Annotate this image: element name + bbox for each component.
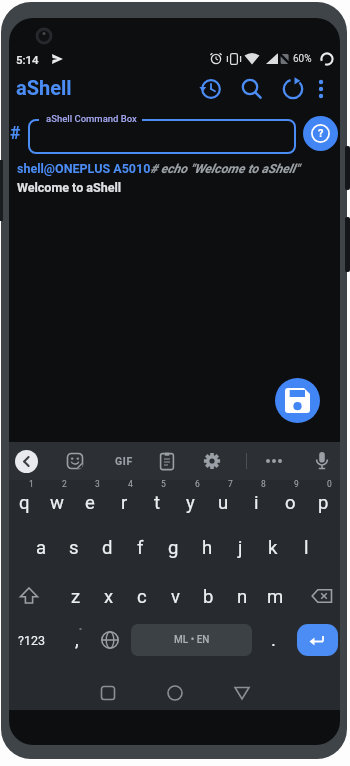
button[interactable] [278,74,308,104]
button[interactable]: u [207,490,239,516]
staticText: 5:14 [16,53,39,66]
staticText: e [85,492,95,514]
staticText: 7 [228,479,233,489]
staticText: h [202,537,213,559]
staticText: ML • EN [174,634,210,646]
button[interactable] [297,624,338,656]
staticText: 0 [327,479,332,489]
button[interactable]: i [240,490,272,516]
button[interactable] [11,624,51,656]
button[interactable]: e [74,490,106,516]
staticText: shell@ONEPLUS A5010# echo "Welcome to aS… [17,161,300,176]
button[interactable] [109,446,139,476]
staticText: d [102,537,113,559]
button[interactable]: q [9,490,40,516]
button[interactable] [60,446,90,476]
button[interactable] [93,678,123,708]
button[interactable]: d [91,535,123,561]
button[interactable] [15,450,38,473]
button[interactable]: p [307,490,339,516]
staticText: 5 [161,479,166,489]
staticText: ?123 [18,633,45,648]
staticText: GIF [115,455,133,467]
button[interactable]: s [58,535,90,561]
staticText: Welcome to aShell [17,180,122,195]
staticText: u [218,492,229,514]
staticText: 8 [261,479,266,489]
button[interactable]: ? [303,116,338,151]
button[interactable]: c [126,584,158,610]
staticText: n [237,586,248,608]
staticText: p [318,492,329,514]
staticText: 2 [62,479,67,489]
staticText: l [304,537,309,559]
button[interactable]: z [60,584,92,610]
button[interactable] [160,678,190,708]
staticText: q [19,492,30,514]
button[interactable]: t [141,490,173,516]
button[interactable]: ML • EN [131,624,252,656]
button[interactable] [95,625,125,655]
staticText: m [267,586,284,608]
staticText: t [154,492,161,514]
staticText: w [50,492,64,514]
staticText: k [268,537,278,559]
button[interactable] [307,582,337,612]
staticText: . [271,629,276,649]
button[interactable] [259,446,289,476]
staticText: ° [79,626,82,635]
button[interactable]: r [108,490,140,516]
button[interactable]: m [259,584,291,610]
button[interactable] [196,74,226,104]
staticText: o [285,492,296,514]
button[interactable]: j [224,535,256,561]
button[interactable] [227,678,257,708]
staticText: 1 [29,479,34,489]
staticText: aShell Command Box [46,113,137,124]
staticText: j [238,537,243,559]
button[interactable] [14,582,44,612]
button[interactable]: o [274,490,306,516]
button[interactable]: f [124,535,156,561]
staticText: 60% [293,53,312,65]
staticText: aShell [16,76,72,99]
button[interactable] [152,446,182,476]
staticText: 9 [294,479,299,489]
staticText: x [104,586,114,608]
button[interactable] [307,446,337,476]
staticText: i [254,492,259,514]
staticText: # [10,123,21,144]
staticText: ? [318,127,324,140]
button[interactable]: n [226,584,258,610]
staticText: z [71,586,81,608]
button[interactable] [237,74,267,104]
button[interactable]: g [157,535,189,561]
staticText: g [168,537,179,559]
button[interactable]: b [192,584,224,610]
button[interactable]: k [257,535,289,561]
staticText: r [121,492,128,514]
button[interactable] [197,446,227,476]
staticText: c [137,586,147,608]
button[interactable]: a [25,535,57,561]
button[interactable]: h [191,535,223,561]
staticText: 6 [195,479,200,489]
staticText: 4 [128,479,133,489]
staticText: v [171,586,180,608]
staticText: , [75,629,79,649]
button[interactable]: w [41,490,73,516]
button[interactable]: v [159,584,191,610]
button[interactable]: x [93,584,125,610]
staticText: a [36,537,47,559]
staticText: b [203,586,214,608]
button[interactable]: y [174,490,206,516]
button[interactable] [306,74,336,104]
button[interactable] [275,378,320,423]
staticText: 3 [95,479,100,489]
staticText: f [137,537,144,559]
staticText: s [69,537,79,559]
button[interactable]: l [290,535,322,561]
staticText: y [186,492,195,514]
